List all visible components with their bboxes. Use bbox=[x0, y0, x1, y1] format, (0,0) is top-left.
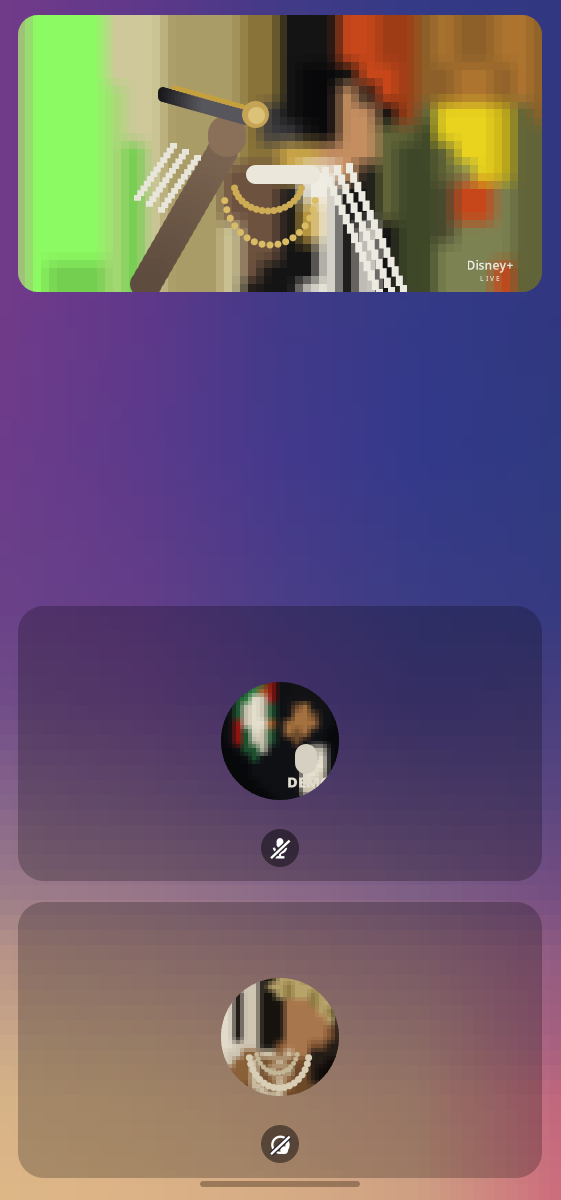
staticText: L I V E bbox=[480, 274, 500, 283]
staticText: Disney+ bbox=[466, 257, 513, 273]
button[interactable]: DEMO bbox=[18, 606, 542, 881]
button[interactable] bbox=[18, 902, 542, 1178]
staticText: DEMO bbox=[287, 772, 332, 791]
